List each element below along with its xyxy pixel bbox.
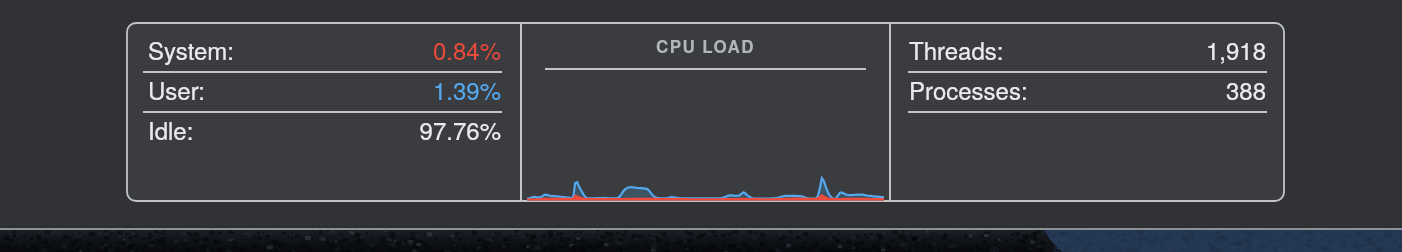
staticText: 388 — [1225, 72, 1266, 106]
button[interactable]: System: — [148, 29, 501, 69]
button[interactable]: Idle: — [148, 109, 501, 149]
staticText: 0.84% — [432, 32, 501, 66]
staticText: 97.76% — [419, 112, 501, 146]
staticText: Idle: — [148, 112, 194, 146]
staticText: Threads: — [909, 32, 1004, 66]
staticText: Processes: — [909, 72, 1028, 106]
button[interactable]: Threads: — [909, 29, 1266, 69]
staticText: 1.39% — [432, 72, 501, 106]
staticText: System: — [148, 32, 234, 66]
staticText: User: — [148, 72, 205, 106]
button[interactable]: Processes: — [909, 69, 1266, 109]
button[interactable]: User: — [148, 69, 501, 109]
staticText: CPU LOAD — [656, 34, 755, 58]
staticText: 1,918 — [1205, 32, 1266, 66]
